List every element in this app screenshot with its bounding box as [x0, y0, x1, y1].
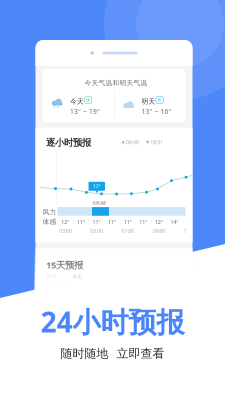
- staticText: 风力: [42, 208, 56, 216]
- staticText: 昨天: [46, 273, 56, 280]
- staticText: 今天: [72, 273, 82, 280]
- staticText: 今天: [70, 97, 84, 106]
- staticText: 06:46: [125, 139, 139, 146]
- staticText: 14°: [170, 218, 178, 226]
- staticText: 12°: [61, 218, 69, 226]
- staticText: 逐小时预报: [46, 137, 91, 148]
- staticText: 12°: [155, 218, 163, 226]
- staticText: 优: [86, 97, 90, 102]
- staticText: 明天: [141, 97, 155, 106]
- staticText: 北风3级: [92, 200, 106, 205]
- staticText: 1: [183, 227, 186, 234]
- staticText: 05:00: [90, 227, 103, 234]
- staticText: 11°: [77, 218, 85, 226]
- staticText: 13° ~ 16°: [141, 107, 171, 116]
- staticText: 体感: [42, 218, 56, 226]
- staticText: 良: [158, 97, 162, 102]
- button[interactable]: 逐小时预报: [35, 128, 192, 242]
- staticText: 随时随地 立即查看: [60, 346, 164, 361]
- staticText: 11°: [108, 218, 116, 226]
- button[interactable]: 今天: [72, 273, 90, 280]
- staticText: 03:00: [59, 227, 72, 234]
- staticText: 11°: [92, 218, 100, 226]
- staticText: 24小时预报: [40, 303, 184, 340]
- staticText: 18:31: [149, 139, 163, 146]
- staticText: 11°: [139, 218, 147, 226]
- staticText: 11°: [124, 218, 132, 226]
- staticText: 13° ~ 19°: [70, 107, 100, 116]
- staticText: 09:00: [153, 227, 166, 234]
- staticText: 12°: [93, 183, 101, 190]
- staticText: 今天气温和明天气温: [84, 79, 147, 87]
- button[interactable]: 今天气温和明天气温: [42, 69, 185, 122]
- staticText: 07:00: [121, 227, 134, 234]
- staticText: 15天预报: [46, 259, 83, 271]
- button[interactable]: 昨天: [46, 273, 64, 280]
